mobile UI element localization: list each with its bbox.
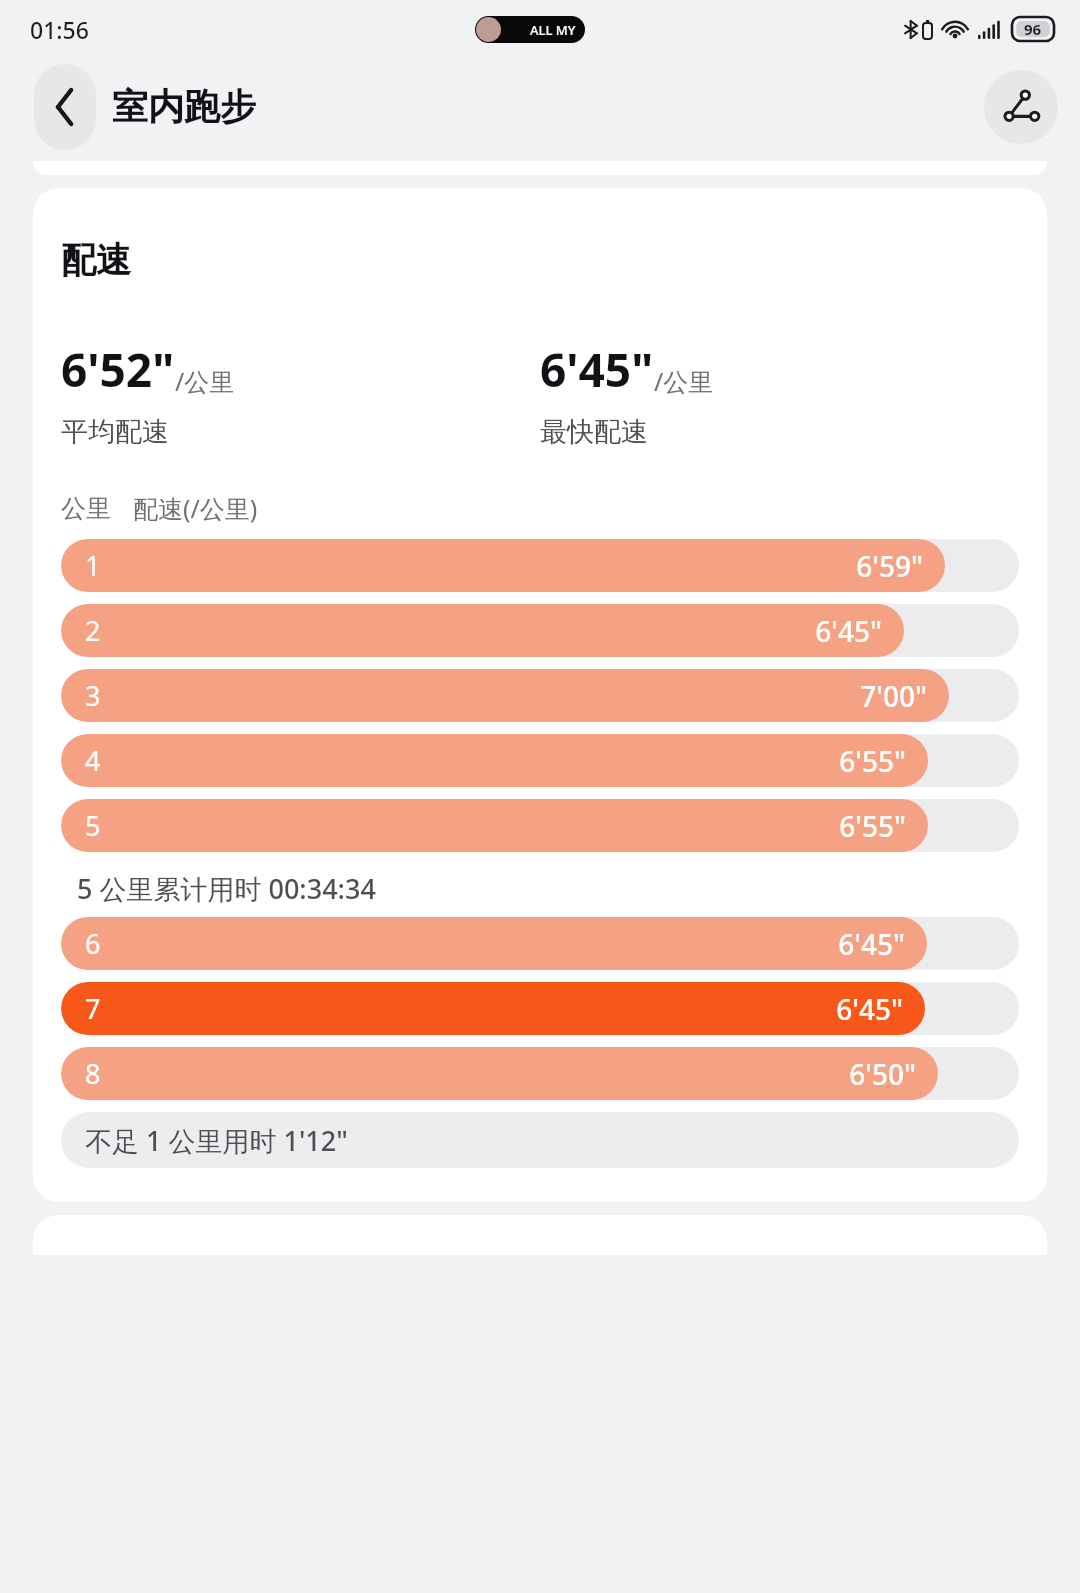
staticText: 平均配速: [61, 415, 169, 449]
staticText: 6'45": [836, 990, 903, 1028]
staticText: 3: [85, 677, 101, 714]
button[interactable]: 2: [61, 604, 1019, 657]
button[interactable]: 6: [61, 917, 1019, 970]
button[interactable]: Share: [984, 70, 1058, 144]
staticText: /公里: [175, 364, 235, 398]
button[interactable]: 1: [61, 539, 1019, 592]
staticText: 最快配速: [540, 415, 648, 449]
button[interactable]: 4: [61, 734, 1019, 787]
staticText: 6'52": [61, 338, 175, 401]
staticText: 7'00": [860, 677, 927, 715]
staticText: 01:56: [30, 14, 89, 45]
staticText: 2: [85, 612, 101, 649]
button[interactable]: Back: [34, 64, 96, 150]
staticText: 6: [85, 925, 101, 962]
staticText: ALL MY: [530, 21, 576, 39]
staticText: 室内跑步: [112, 84, 256, 129]
staticText: 8: [85, 1055, 101, 1092]
staticText: 不足 1 公里用时 1'12": [85, 1122, 348, 1159]
staticText: 7: [85, 990, 101, 1027]
staticText: 6'45": [815, 612, 882, 650]
staticText: 公里: [61, 493, 111, 524]
staticText: 6'55": [839, 742, 906, 780]
button[interactable]: 8: [61, 1047, 1019, 1100]
staticText: 6'59": [856, 547, 923, 585]
button[interactable]: 5: [61, 799, 1019, 852]
staticText: 6'45": [540, 338, 654, 401]
staticText: 5: [85, 807, 101, 844]
button[interactable]: 7: [61, 982, 1019, 1035]
staticText: 配速: [61, 238, 131, 282]
staticText: /公里: [654, 364, 714, 398]
staticText: 6'55": [839, 807, 906, 845]
staticText: 1: [85, 547, 101, 584]
staticText: 4: [85, 742, 101, 779]
staticText: 配速(/公里): [133, 491, 258, 525]
staticText: 96: [1024, 19, 1042, 39]
button[interactable]: 3: [61, 669, 1019, 722]
staticText: 6'50": [849, 1055, 916, 1093]
staticText: 6'45": [838, 925, 905, 963]
staticText: 5 公里累计用时 00:34:34: [77, 870, 376, 907]
